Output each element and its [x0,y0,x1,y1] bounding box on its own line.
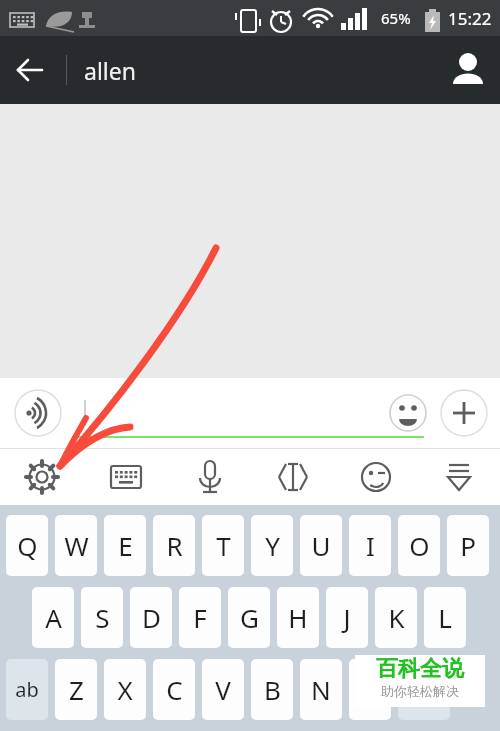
button[interactable]: U [300,515,342,576]
staticText: Z [69,672,84,707]
button[interactable]: Voice input [168,449,251,505]
button[interactable]: More [440,389,488,437]
button[interactable]: S [81,587,123,648]
staticText: X [117,672,133,707]
staticText: B [264,672,281,707]
staticText: T [216,528,231,563]
button[interactable]: Text cursor [251,449,334,505]
staticText: O [409,528,430,563]
button[interactable]: W [55,515,97,576]
staticText: S [95,600,110,635]
staticText: Y [265,528,280,563]
button[interactable]: Sticker [334,449,417,505]
button[interactable]: E [104,515,146,576]
staticText: 65% [381,8,411,28]
button[interactable]: Y [251,515,293,576]
staticText: H [288,600,308,635]
staticText: M [358,672,382,707]
button[interactable]: Voice message [14,389,62,437]
staticText: L [438,600,452,635]
staticText: W [64,528,89,563]
button[interactable]: Backspace [398,659,450,720]
button[interactable]: ab [6,659,48,720]
button[interactable]: Emoji [388,393,428,433]
button[interactable]: Profile [436,38,500,102]
button[interactable]: J [326,587,368,648]
button[interactable]: K [375,587,417,648]
staticText: V [215,672,231,707]
button[interactable]: B [251,659,293,720]
button[interactable]: Back [0,42,56,98]
button[interactable]: Settings [0,449,84,505]
staticText: 15:22 [448,7,492,30]
staticText: 助你轻松解决 [381,683,459,699]
button[interactable]: X [104,659,146,720]
staticText: ab [15,676,39,703]
button[interactable]: F [179,587,221,648]
staticText: G [240,600,259,635]
button[interactable]: L [424,587,466,648]
button[interactable]: M [349,659,391,720]
staticText: C [166,672,183,707]
staticText: N [311,672,331,707]
button[interactable]: G [228,587,270,648]
button[interactable]: Z [55,659,97,720]
staticText: 百科全说 [376,655,464,683]
button[interactable]: R [153,515,195,576]
button[interactable]: V [202,659,244,720]
staticText: E [118,528,133,563]
staticText: P [460,528,476,563]
staticText: A [45,600,62,635]
staticText: J [343,600,351,635]
staticText: allen [84,55,136,86]
button[interactable]: I [349,515,391,576]
staticText: R [166,528,183,563]
staticText: I [366,528,375,563]
button[interactable]: Hide keyboard [417,449,500,505]
button[interactable]: O [398,515,440,576]
button[interactable]: P [447,515,489,576]
button[interactable]: T [202,515,244,576]
button[interactable]: Q [6,515,48,576]
staticText: U [311,528,331,563]
staticText: K [388,600,405,635]
staticText: D [142,600,161,635]
button[interactable]: N [300,659,342,720]
button[interactable]: H [277,587,319,648]
button[interactable]: A [32,587,74,648]
staticText: F [193,600,207,635]
staticText: Q [17,528,38,563]
button[interactable]: C [153,659,195,720]
button[interactable]: Keyboard [84,449,168,505]
button[interactable]: D [130,587,172,648]
